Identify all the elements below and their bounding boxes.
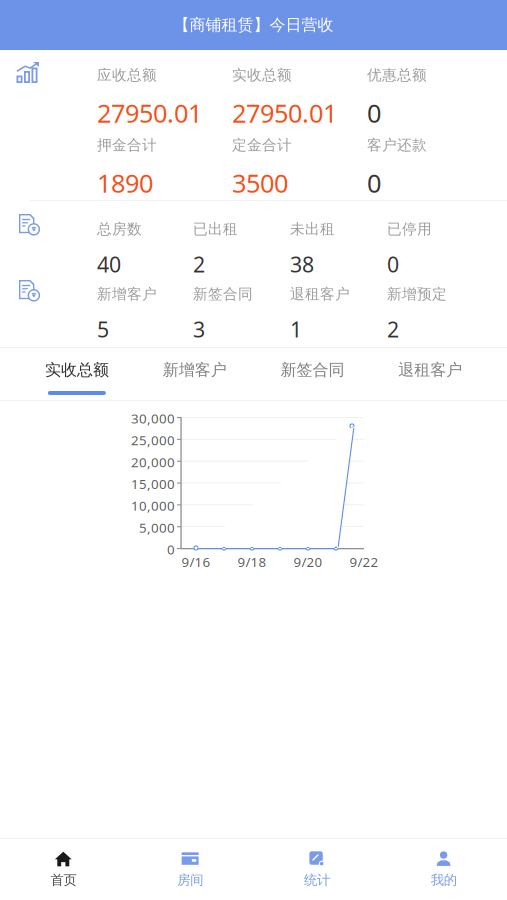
staticText: 实收总额 xyxy=(232,66,292,84)
staticText: 押金合计 xyxy=(97,136,157,154)
staticText: 总房数 xyxy=(97,220,142,238)
staticText: 房间 xyxy=(177,872,203,888)
staticText: 新签合同 xyxy=(280,360,344,380)
button[interactable]: 我的 xyxy=(380,838,507,900)
staticText: 0 xyxy=(387,250,399,278)
button[interactable]: 退租客户 xyxy=(371,348,489,398)
staticText: 新签合同 xyxy=(193,285,253,303)
staticText: 退租客户 xyxy=(398,360,462,380)
staticText: 27950.01 xyxy=(232,96,337,130)
staticText: 20,000 xyxy=(131,453,175,471)
staticText: 退租客户 xyxy=(290,285,350,303)
staticText: 我的 xyxy=(431,872,457,888)
button[interactable]: 实收总额 xyxy=(18,348,136,398)
staticText: 0 xyxy=(367,166,381,200)
staticText: 统计 xyxy=(304,872,330,888)
staticText: 1 xyxy=(290,315,302,343)
staticText: 9/20 xyxy=(293,553,322,571)
button[interactable]: 房间 xyxy=(127,838,254,900)
button[interactable]: 统计 xyxy=(253,838,380,900)
staticText: 25,000 xyxy=(131,431,175,449)
staticText: 9/16 xyxy=(181,553,210,571)
button[interactable]: 新增客户 xyxy=(136,348,254,398)
staticText: 已出租 xyxy=(193,220,238,238)
staticText: 客户还款 xyxy=(367,136,427,154)
staticText: 27950.01 xyxy=(97,96,202,130)
staticText: 38 xyxy=(290,250,314,278)
staticText: 40 xyxy=(97,250,121,278)
staticText: 9/18 xyxy=(237,553,266,571)
staticText: 定金合计 xyxy=(232,136,292,154)
staticText: 2 xyxy=(387,315,399,343)
staticText: 1890 xyxy=(97,166,153,200)
staticText: 0 xyxy=(367,96,381,130)
staticText: 优惠总额 xyxy=(367,66,427,84)
staticText: 3500 xyxy=(232,166,288,200)
staticText: 新增客户 xyxy=(163,360,227,380)
staticText: 新增客户 xyxy=(97,285,157,303)
staticText: 未出租 xyxy=(290,220,335,238)
staticText: 应收总额 xyxy=(97,66,157,84)
staticText: 30,000 xyxy=(131,409,175,427)
staticText: 【商铺租赁】今日营收 xyxy=(173,15,333,35)
staticText: 首页 xyxy=(50,872,76,888)
button[interactable]: 新签合同 xyxy=(253,348,371,398)
staticText: 实收总额 xyxy=(45,360,109,380)
button[interactable]: 首页 xyxy=(0,838,127,900)
staticText: 15,000 xyxy=(131,475,175,493)
staticText: 5 xyxy=(97,315,109,343)
staticText: 0 xyxy=(167,540,175,558)
staticText: 10,000 xyxy=(131,497,175,514)
staticText: 2 xyxy=(193,250,205,278)
staticText: 已停用 xyxy=(387,220,432,238)
staticText: 9/22 xyxy=(349,553,378,571)
staticText: 3 xyxy=(193,315,205,343)
staticText: 新增预定 xyxy=(387,285,447,303)
staticText: 5,000 xyxy=(139,519,175,536)
